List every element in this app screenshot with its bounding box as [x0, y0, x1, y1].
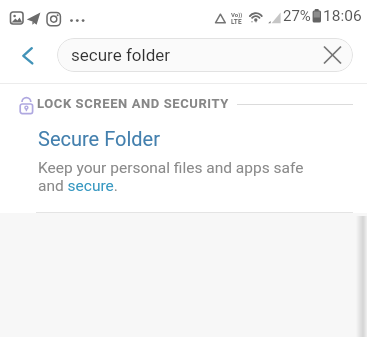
- staticText: Keep your personal files and apps safe a…: [38, 159, 304, 195]
- button[interactable]: secure folder: [57, 38, 353, 72]
- staticText: Vo)): [231, 11, 243, 18]
- staticText: 27%: [283, 7, 311, 25]
- button[interactable]: [315, 38, 353, 72]
- staticText: Secure Folder: [38, 127, 160, 150]
- staticText: LTE: [231, 18, 242, 26]
- staticText: 18:06: [323, 7, 362, 25]
- staticText: LOCK SCREEN AND SECURITY: [37, 96, 229, 111]
- button[interactable]: Secure Folder: [0, 119, 367, 211]
- button[interactable]: [14, 42, 42, 70]
- staticText: secure folder: [71, 45, 170, 65]
